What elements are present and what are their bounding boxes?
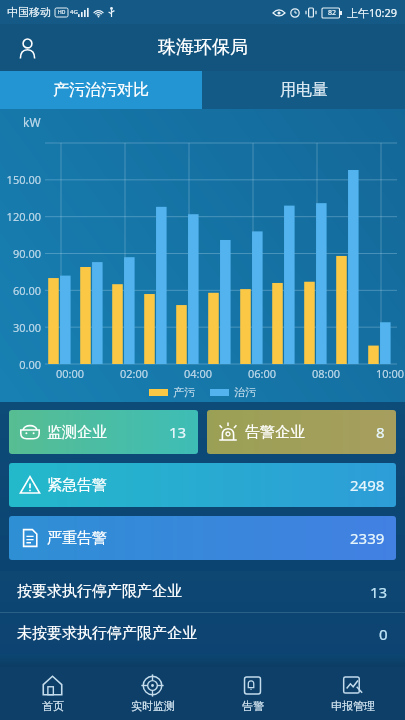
staticText: 2339 [350,528,385,548]
button[interactable]: 实时监测 [105,667,200,720]
staticText: 严重告警 [47,529,107,548]
button[interactable]: 按要求执行停产限产企业 [0,571,405,612]
staticText: HD [58,9,66,16]
staticText: 120.00 [0,209,41,224]
staticText: 告警 [242,699,264,713]
button[interactable]: 告警企业 [207,410,396,454]
button[interactable]: 告警 [205,667,300,720]
staticText: 00:00 [56,366,85,381]
staticText: 13 [370,582,388,602]
staticText: 用电量 [280,80,328,100]
button[interactable]: 严重告警 [9,516,396,560]
staticText: 产污 [173,385,195,399]
staticText: 30.00 [0,320,41,335]
staticText: 06:00 [248,366,277,381]
button[interactable]: 产污治污对比 [0,71,202,109]
button[interactable]: Profile [8,29,46,67]
staticText: 02:00 [120,366,149,381]
button[interactable]: 监测企业 [9,410,198,454]
staticText: kW [23,114,41,130]
staticText: 按要求执行停产限产企业 [17,582,182,601]
staticText: 90.00 [0,246,41,261]
staticText: 监测企业 [47,423,107,442]
staticText: 08:00 [312,366,341,381]
button[interactable]: 申报管理 [305,667,400,720]
staticText: 2498 [350,475,385,495]
button[interactable]: 紧急告警 [9,463,396,507]
staticText: 8 [376,422,385,442]
staticText: 治污 [234,385,256,399]
staticText: 04:00 [184,366,213,381]
button[interactable]: 未按要求执行停产限产企业 [0,613,405,654]
staticText: 150.00 [0,172,41,187]
staticText: 0 [379,624,388,644]
staticText: 60.00 [0,283,41,298]
staticText: 首页 [42,699,64,713]
button[interactable]: 首页 [5,667,100,720]
staticText: 告警企业 [245,423,305,442]
staticText: 4G [70,8,78,16]
staticText: 实时监测 [131,699,175,713]
staticText: 产污治污对比 [53,80,149,100]
button[interactable]: 用电量 [202,71,405,109]
staticText: 0.00 [0,357,41,372]
staticText: 上午10:29 [347,5,398,20]
staticText: 13 [169,422,187,442]
staticText: 中国移动 [7,5,51,19]
staticText: 10:00 [376,366,405,381]
staticText: 未按要求执行停产限产企业 [17,624,197,643]
staticText: 82 [328,8,337,18]
staticText: 珠海环保局 [158,36,248,59]
staticText: 申报管理 [331,699,375,713]
staticText: 紧急告警 [47,476,107,495]
